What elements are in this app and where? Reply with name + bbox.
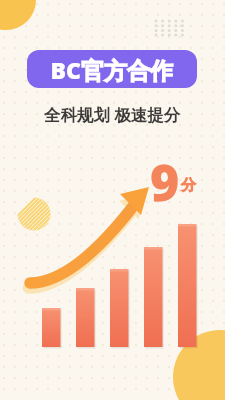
button[interactable]: BC官方合作 全科规划 极速提分 — [0, 0, 225, 400]
